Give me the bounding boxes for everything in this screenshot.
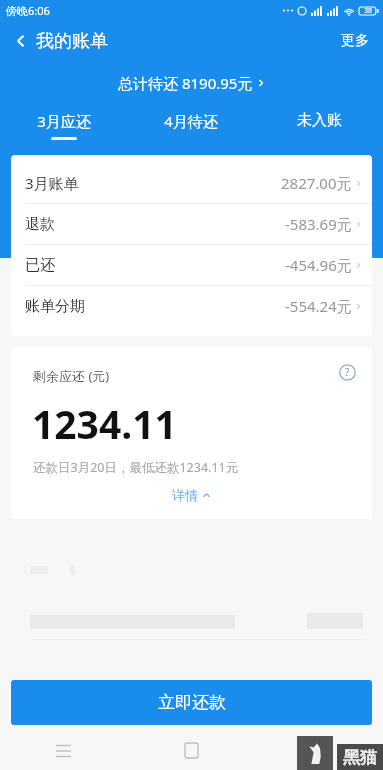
staticText: 1234.11 [32, 397, 177, 450]
button[interactable]: Back [255, 730, 383, 770]
staticText: 2827.00元 [281, 173, 352, 193]
staticText: 傍晚6:06 [6, 3, 50, 18]
button[interactable]: 账单分期 [11, 286, 372, 326]
button[interactable]: Back [0, 20, 42, 62]
button[interactable]: 4月待还 [127, 104, 255, 142]
staticText: 更多 [341, 32, 369, 50]
button[interactable]: 总计待还 8190.95元 [110, 69, 273, 97]
staticText: 总计待还 8190.95元 [118, 73, 253, 93]
staticText: 黑猫 [343, 747, 377, 768]
button[interactable]: 3月账单 [11, 163, 372, 203]
staticText: 3月账单 [25, 173, 79, 193]
staticText: 未入账 [297, 111, 342, 130]
staticText: 立即还款 [158, 692, 226, 713]
button[interactable]: 更多 [327, 20, 383, 62]
staticText: 退款 [25, 215, 55, 234]
staticText: 我的账单 [36, 30, 108, 53]
staticText: 3月应还 [37, 111, 91, 131]
button[interactable]: 退款 [11, 204, 372, 244]
button[interactable]: 3月应还 [0, 104, 127, 142]
staticText: 详情 [172, 487, 198, 503]
button[interactable]: 立即还款 [11, 680, 372, 725]
staticText: 38 [364, 6, 373, 16]
staticText: 账单分期 [25, 297, 85, 316]
button[interactable]: 未入账 [255, 104, 383, 142]
button[interactable]: 详情 [162, 484, 221, 506]
staticText: -454.96元 [285, 255, 352, 275]
staticText: 还款日3月20日，最低还款1234.11元 [33, 459, 239, 476]
staticText: 已还 [25, 256, 55, 275]
button[interactable]: Help [336, 361, 358, 383]
button[interactable]: Home [127, 730, 255, 770]
button[interactable]: 已还 [11, 245, 372, 285]
staticText: 4月待还 [164, 111, 218, 131]
staticText: -583.69元 [285, 214, 352, 234]
button[interactable]: Recents [0, 730, 127, 770]
staticText: -554.24元 [285, 296, 352, 316]
staticText: ? [345, 365, 350, 379]
staticText: 剩余应还 (元) [33, 367, 110, 385]
